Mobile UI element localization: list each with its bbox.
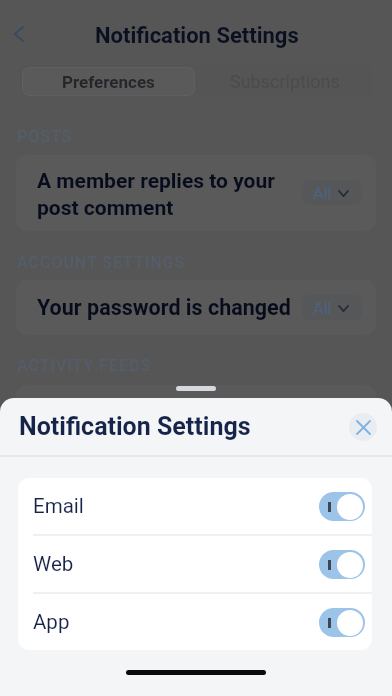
button[interactable]: Close [349,413,377,441]
staticText: Notification Settings [95,23,299,49]
button[interactable]: Back [5,21,31,47]
staticText: Your password is changed [37,295,291,320]
button[interactable]: Toggle on [319,608,365,637]
button[interactable]: Preferences [22,67,195,96]
staticText: Preferences [62,72,155,92]
staticText: App [33,610,70,634]
button[interactable]: Toggle on [319,492,365,521]
button[interactable]: Web [18,536,372,592]
staticText: ACCOUNT SETTINGS [17,253,186,272]
staticText: Web [33,552,74,576]
button[interactable]: Email [18,478,372,534]
button[interactable]: All [302,180,362,205]
button[interactable]: App [18,594,372,650]
button[interactable]: All [302,295,362,320]
staticText: A member replies to your post comment [37,169,297,221]
staticText: All [313,299,332,318]
button[interactable]: A member replies to your post comment [16,155,376,231]
staticText: Subscriptions [230,71,340,92]
staticText: POSTS [17,127,73,146]
staticText: Notification Settings [19,412,251,441]
staticText: All [313,184,332,203]
staticText: ACTIVITY FEEDS [17,356,152,375]
staticText: Email [33,494,84,518]
button[interactable]: Your password is changed [16,280,376,335]
button[interactable]: Toggle on [319,550,365,579]
